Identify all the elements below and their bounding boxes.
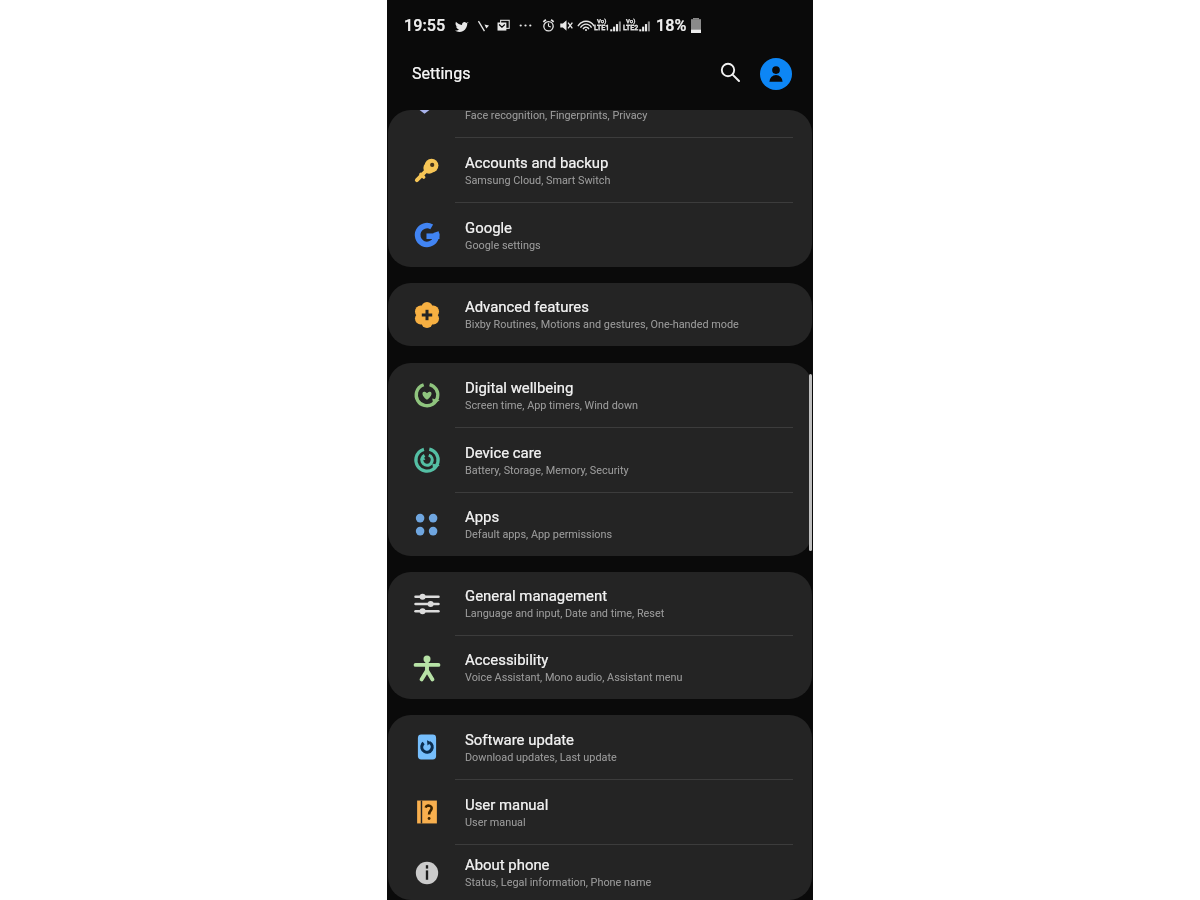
staticText: Status, Legal information, Phone name bbox=[465, 876, 652, 889]
staticText: Accessibility bbox=[465, 651, 549, 668]
button[interactable]: User manual bbox=[388, 780, 812, 844]
staticText: Google bbox=[465, 219, 513, 236]
staticText: Accounts and backup bbox=[465, 154, 609, 171]
staticText: About phone bbox=[465, 856, 550, 873]
staticText: Vo) bbox=[626, 17, 636, 24]
staticText: User manual bbox=[465, 796, 549, 813]
staticText: Settings bbox=[412, 64, 471, 83]
staticText: Google settings bbox=[465, 239, 541, 252]
button[interactable]: Device care bbox=[388, 428, 812, 492]
staticText: 19:55 bbox=[404, 16, 446, 35]
staticText: Language and input, Date and time, Reset bbox=[465, 607, 665, 620]
button[interactable]: Accounts and backup bbox=[388, 138, 812, 202]
staticText: Software update bbox=[465, 731, 575, 748]
button[interactable]: Software update bbox=[388, 715, 812, 779]
staticText: 18% bbox=[656, 16, 687, 35]
staticText: Apps bbox=[465, 508, 500, 525]
staticText: General management bbox=[465, 587, 608, 604]
button[interactable]: Google bbox=[388, 203, 812, 267]
button[interactable]: Digital wellbeing bbox=[388, 363, 812, 427]
button[interactable]: Search bbox=[709, 51, 751, 93]
staticText: Voice Assistant, Mono audio, Assistant m… bbox=[465, 671, 683, 684]
button[interactable]: Apps bbox=[388, 493, 812, 556]
staticText: Samsung Cloud, Smart Switch bbox=[465, 174, 611, 187]
staticText: Bixby Routines, Motions and gestures, On… bbox=[465, 318, 739, 331]
staticText: Default apps, App permissions bbox=[465, 528, 613, 541]
button[interactable]: General management bbox=[388, 572, 812, 635]
staticText: Face recognition, Fingerprints, Privacy bbox=[465, 110, 648, 122]
button[interactable]: About phone bbox=[388, 845, 812, 900]
staticText: Vo) bbox=[597, 17, 607, 24]
button[interactable]: Advanced features bbox=[388, 283, 812, 346]
staticText: Screen time, App timers, Wind down bbox=[465, 399, 639, 412]
button[interactable]: Accessibility bbox=[388, 636, 812, 699]
button[interactable]: Account bbox=[760, 58, 792, 90]
staticText: Download updates, Last update bbox=[465, 751, 617, 764]
staticText: User manual bbox=[465, 816, 526, 829]
staticText: LTE1 bbox=[594, 24, 610, 32]
staticText: LTE2 bbox=[623, 24, 639, 32]
staticText: Digital wellbeing bbox=[465, 379, 574, 396]
staticText: Advanced features bbox=[465, 298, 589, 315]
button[interactable]: Face recognition, Fingerprints, Privacy bbox=[388, 110, 812, 137]
staticText: Device care bbox=[465, 444, 542, 461]
staticText: Battery, Storage, Memory, Security bbox=[465, 464, 629, 477]
